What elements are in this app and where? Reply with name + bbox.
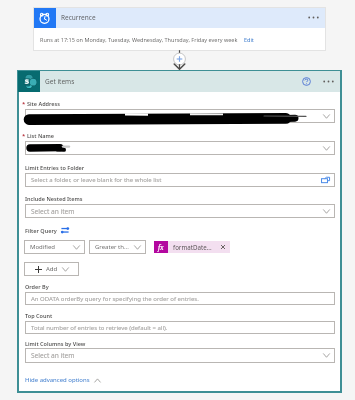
button[interactable]: Help <box>296 71 316 92</box>
staticText: Order By <box>25 283 49 290</box>
button[interactable]: Edit <box>244 36 254 43</box>
staticText: Filter Query <box>25 227 57 234</box>
button[interactable]: An ODATA orderBy query for specifying th… <box>25 292 335 305</box>
button[interactable]: More commands <box>300 7 326 28</box>
staticText: Include Nested Items <box>25 195 83 202</box>
button[interactable]: More commands <box>316 71 340 92</box>
staticText: Select a folder, or leave blank for the … <box>31 176 162 184</box>
staticText: * <box>22 100 26 108</box>
staticText: formatDate... <box>173 243 212 251</box>
button[interactable]: Modified <box>24 240 85 254</box>
staticText: Recurrence <box>61 13 96 22</box>
staticText: List Name <box>27 132 55 139</box>
button[interactable]: Total number of entries to retrieve (def… <box>25 321 335 334</box>
staticText: Greater th... <box>95 243 129 251</box>
staticText: * <box>22 132 26 140</box>
button[interactable]: Select a folder, or leave blank for the … <box>25 173 335 187</box>
button[interactable]: Get items <box>18 71 340 92</box>
staticText: An ODATA orderBy query for specifying th… <box>31 295 199 303</box>
staticText: Select an item <box>31 351 75 360</box>
button[interactable]: Select an item <box>25 204 335 218</box>
staticText: Add <box>46 265 58 273</box>
button[interactable]: Select an item <box>25 348 335 363</box>
button[interactable] <box>25 109 335 123</box>
button[interactable]: Recurrence <box>33 7 326 28</box>
staticText: Limit Entries to Folder <box>25 164 85 171</box>
button[interactable]: Remove formatDate token <box>218 241 227 253</box>
staticText: Edit <box>244 36 254 43</box>
button[interactable]: fx <box>154 241 230 253</box>
staticText: Top Count <box>25 312 53 319</box>
staticText: fx <box>158 243 164 252</box>
button[interactable] <box>25 141 335 155</box>
button[interactable]: Greater th... <box>89 240 146 254</box>
staticText: Limit Columns by View <box>25 340 86 347</box>
staticText: Modified <box>30 243 55 251</box>
staticText: Get items <box>45 77 75 86</box>
button[interactable]: Add <box>24 262 79 276</box>
button[interactable]: Hide advanced options <box>25 376 101 384</box>
staticText: Select an item <box>31 207 75 216</box>
button[interactable]: Insert a new step <box>171 49 188 69</box>
staticText: Total number of entries to retrieve (def… <box>31 324 168 332</box>
staticText: Runs at 17:15 on Monday, Tuesday, Wednes… <box>40 36 238 43</box>
staticText: Hide advanced options <box>25 376 90 384</box>
staticText: Site Address <box>27 100 60 107</box>
